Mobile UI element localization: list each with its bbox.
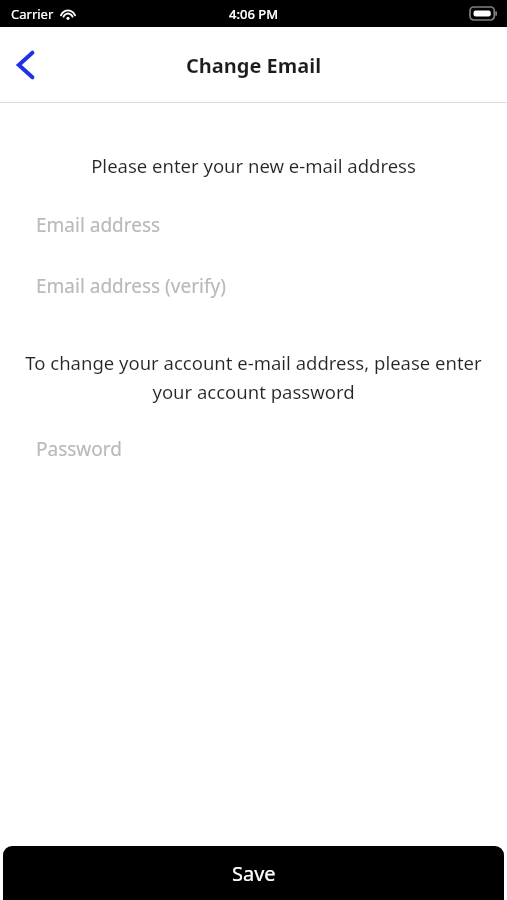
button[interactable]: Email address (verify): [0, 269, 507, 303]
staticText: Password: [36, 436, 122, 462]
staticText: Email address (verify): [36, 273, 226, 299]
button[interactable]: Password: [0, 432, 507, 466]
staticText: Change Email: [186, 52, 322, 79]
staticText: Carrier: [11, 5, 54, 23]
staticText: Save: [232, 860, 276, 887]
button[interactable]: Email address: [0, 208, 507, 242]
staticText: To change your account e-mail address, p…: [16, 350, 491, 404]
staticText: Please enter your new e-mail address: [14, 153, 493, 178]
button[interactable]: Back: [0, 39, 52, 91]
staticText: 4:06 PM: [229, 5, 279, 23]
staticText: Email address: [36, 212, 161, 238]
button[interactable]: Save: [3, 846, 504, 900]
